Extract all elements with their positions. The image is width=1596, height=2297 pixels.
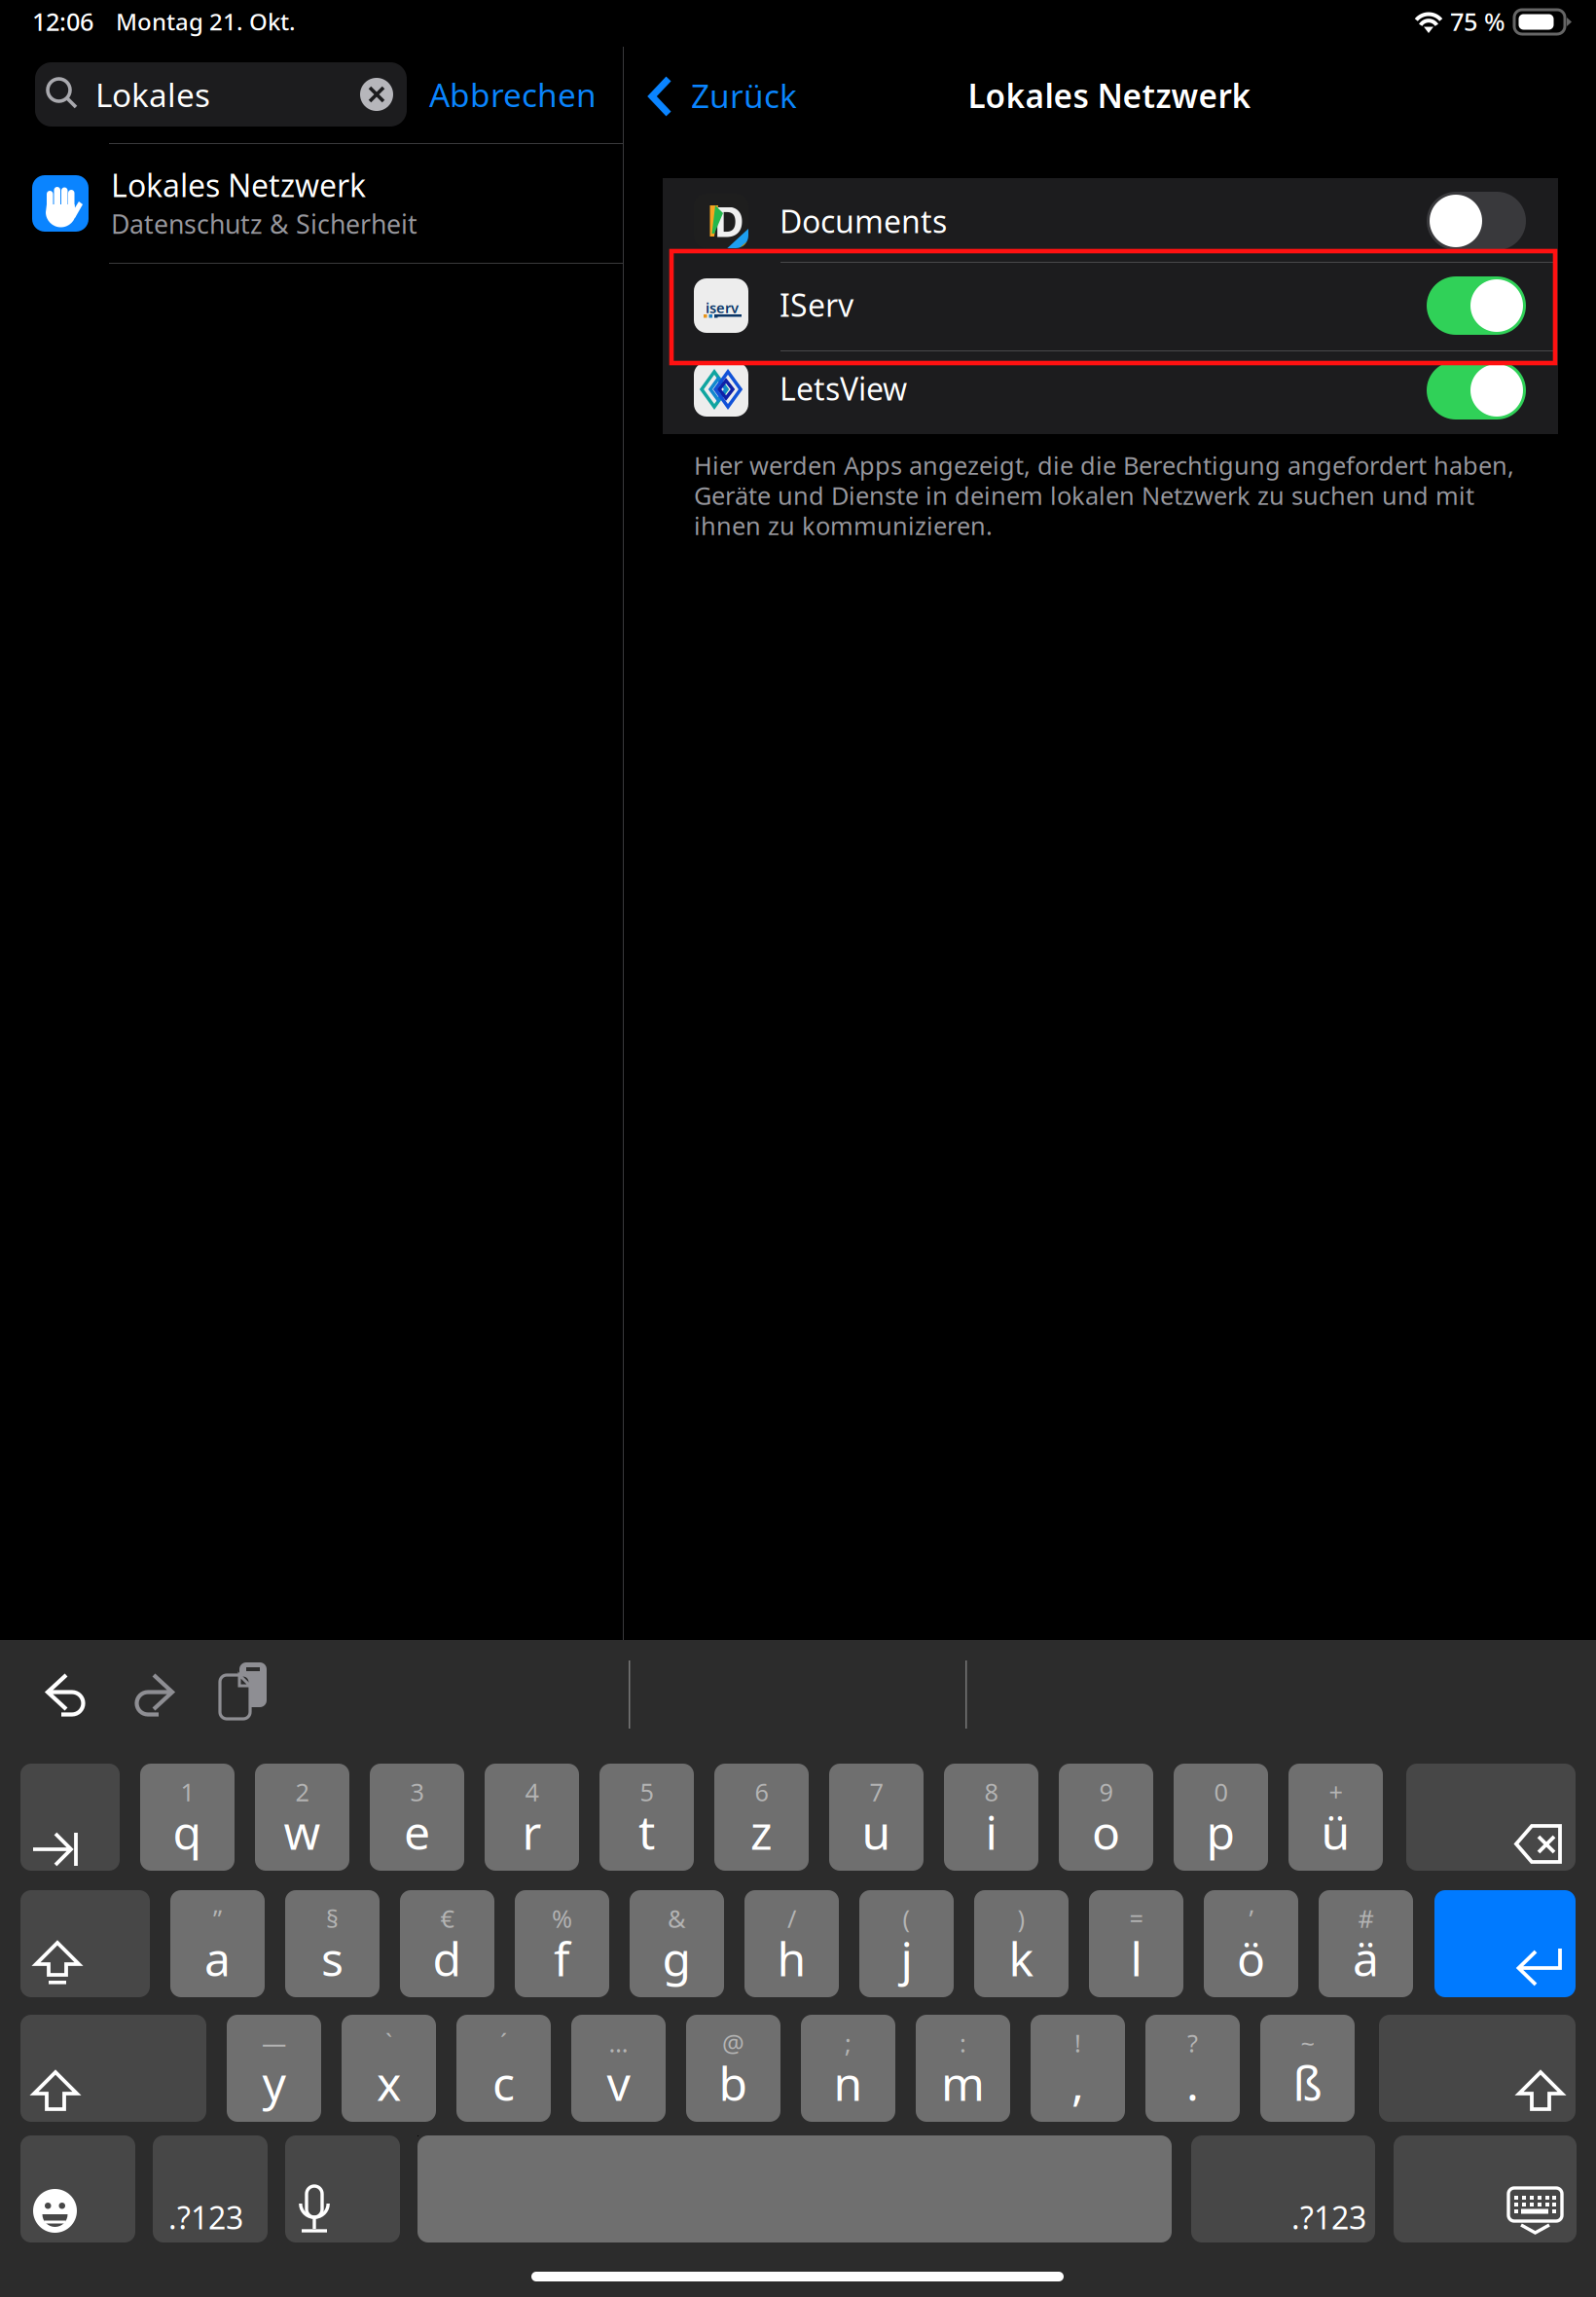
- button[interactable]: 9: [1059, 1764, 1153, 1871]
- button[interactable]: IServ: [663, 267, 1558, 351]
- button[interactable]: 3: [370, 1764, 464, 1871]
- button[interactable]: Lokales Netzwerk: [0, 144, 623, 263]
- button[interactable]: @: [686, 2015, 780, 2122]
- button[interactable]: IServ Schalter: [1427, 276, 1526, 335]
- button[interactable]: ´: [456, 2015, 551, 2122]
- staticText: #: [1358, 1902, 1374, 1935]
- button[interactable]: .?123: [1191, 2135, 1375, 2242]
- button[interactable]: LetsView Schalter: [1427, 361, 1526, 419]
- button[interactable]: Suchtext löschen: [360, 78, 393, 111]
- staticText: ;: [845, 2027, 852, 2059]
- button[interactable]: Diktieren: [285, 2135, 400, 2242]
- button[interactable]: ?: [1145, 2015, 1240, 2122]
- staticText: f: [554, 1927, 570, 1989]
- button[interactable]: LetsView: [663, 352, 1558, 434]
- staticText: LetsView: [780, 368, 907, 409]
- staticText: i: [985, 1801, 997, 1863]
- button[interactable]: Widerrufen: [46, 1673, 87, 1718]
- staticText: :: [960, 2027, 966, 2059]
- staticText: +: [1329, 1776, 1342, 1808]
- staticText: ’: [1249, 1902, 1253, 1935]
- staticText: n: [834, 2052, 863, 2114]
- staticText: —: [262, 2027, 286, 2059]
- button[interactable]: 0: [1174, 1764, 1268, 1871]
- button[interactable]: ;: [801, 2015, 895, 2122]
- staticText: ihnen zu kommunizieren.: [694, 509, 993, 542]
- button[interactable]: ): [974, 1890, 1069, 1997]
- button[interactable]: Zurück: [637, 58, 822, 134]
- button[interactable]: %: [515, 1890, 609, 1997]
- button[interactable]: 2: [255, 1764, 349, 1871]
- staticText: Geräte und Dienste in deinem lokalen Net…: [694, 479, 1474, 512]
- staticText: ”: [213, 1902, 222, 1935]
- button[interactable]: Tastatur ausblenden: [1394, 2135, 1577, 2242]
- staticText: /: [787, 1902, 796, 1935]
- staticText: c: [492, 2052, 515, 2114]
- staticText: t: [638, 1801, 655, 1863]
- button[interactable]: !: [1031, 2015, 1125, 2122]
- button[interactable]: Wiederholen: [133, 1673, 174, 1718]
- button[interactable]: #: [1319, 1890, 1413, 1997]
- button[interactable]: Umschalt: [20, 2015, 206, 2122]
- staticText: o: [1092, 1801, 1120, 1863]
- button[interactable]: /: [744, 1890, 839, 1997]
- staticText: 4: [525, 1776, 539, 1808]
- button[interactable]: §: [285, 1890, 380, 1997]
- button[interactable]: ~: [1260, 2015, 1355, 2122]
- button[interactable]: Löschen: [1406, 1764, 1576, 1871]
- staticText: Lokales Netzwerk: [111, 164, 366, 206]
- button[interactable]: +: [1288, 1764, 1383, 1871]
- button[interactable]: =: [1089, 1890, 1183, 1997]
- button[interactable]: &: [630, 1890, 724, 1997]
- staticText: Zurück: [691, 74, 797, 117]
- button[interactable]: 6: [714, 1764, 809, 1871]
- staticText: d: [433, 1927, 462, 1989]
- button[interactable]: 5: [599, 1764, 694, 1871]
- staticText: 6: [755, 1776, 768, 1808]
- button[interactable]: Feststelltaste: [20, 1890, 150, 1997]
- button[interactable]: :: [916, 2015, 1010, 2122]
- staticText: v: [607, 2052, 630, 2114]
- staticText: ö: [1237, 1927, 1265, 1989]
- button[interactable]: 1: [140, 1764, 235, 1871]
- button[interactable]: Documents: [663, 178, 1558, 266]
- button[interactable]: Return: [1434, 1890, 1576, 1997]
- staticText: 1: [181, 1776, 194, 1808]
- staticText: l: [1130, 1927, 1142, 1989]
- staticText: z: [750, 1801, 773, 1863]
- button[interactable]: Documents Schalter: [1427, 192, 1526, 250]
- button[interactable]: Abbrechen: [428, 62, 598, 127]
- staticText: …: [609, 2027, 628, 2059]
- button[interactable]: Tabulator: [20, 1764, 120, 1871]
- staticText: ): [1017, 1902, 1025, 1935]
- button[interactable]: (: [859, 1890, 954, 1997]
- button[interactable]: Einsetzen: [220, 1662, 269, 1721]
- staticText: !: [1074, 2027, 1081, 2059]
- button[interactable]: ”: [170, 1890, 265, 1997]
- staticText: Documents: [780, 200, 947, 242]
- button[interactable]: .?123: [153, 2135, 268, 2242]
- staticText: y: [262, 2052, 286, 2114]
- staticText: Abbrechen: [429, 73, 597, 116]
- button[interactable]: `: [342, 2015, 436, 2122]
- staticText: ä: [1353, 1927, 1379, 1989]
- staticText: 75 %: [1450, 5, 1505, 38]
- button[interactable]: …: [571, 2015, 666, 2122]
- staticText: 0: [1214, 1776, 1228, 1808]
- button[interactable]: 8: [944, 1764, 1038, 1871]
- staticText: .?123: [1291, 2197, 1366, 2238]
- button[interactable]: €: [400, 1890, 494, 1997]
- button[interactable]: —: [227, 2015, 321, 2122]
- button[interactable]: Umschalt rechts: [1379, 2015, 1576, 2122]
- staticText: b: [719, 2052, 748, 2114]
- staticText: &: [668, 1902, 686, 1935]
- staticText: iserv: [706, 298, 739, 317]
- staticText: 7: [870, 1776, 883, 1808]
- button[interactable]: 4: [485, 1764, 579, 1871]
- staticText: k: [1009, 1927, 1034, 1989]
- staticText: h: [777, 1927, 806, 1989]
- button[interactable]: 7: [829, 1764, 924, 1871]
- button[interactable]: ’: [1204, 1890, 1298, 1997]
- button[interactable]: Emoji: [20, 2135, 135, 2242]
- button[interactable]: Leertaste: [417, 2135, 1172, 2242]
